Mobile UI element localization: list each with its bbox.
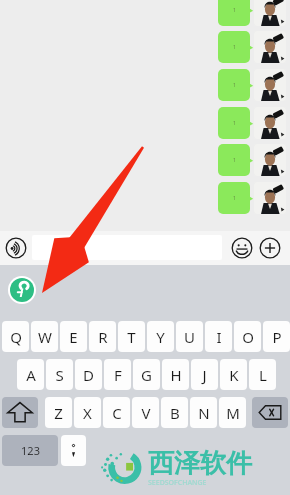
button[interactable]: L (249, 359, 276, 390)
button[interactable]: M (219, 397, 246, 428)
staticText: H (170, 365, 182, 385)
button[interactable]: F (104, 359, 131, 390)
button[interactable]: C (103, 397, 130, 428)
button[interactable]: E (60, 321, 87, 352)
button[interactable] (254, 182, 286, 214)
button[interactable]: S (46, 359, 73, 390)
staticText: V (141, 403, 151, 423)
button[interactable]: X (74, 397, 101, 428)
button[interactable]: 1 (218, 107, 250, 139)
staticText: L (259, 365, 267, 385)
staticText: SEEDSOFCHANGE (148, 478, 207, 488)
button[interactable]: J (191, 359, 218, 390)
button[interactable]: Voice message (5, 237, 27, 259)
button[interactable]: Q (2, 321, 29, 352)
button[interactable] (254, 31, 286, 63)
staticText: 1 (233, 157, 236, 164)
button[interactable] (61, 435, 86, 466)
button[interactable]: 1 (218, 31, 250, 63)
staticText: O (242, 327, 254, 347)
button[interactable]: G (133, 359, 160, 390)
button[interactable]: 123 (2, 435, 58, 466)
button[interactable]: D (75, 359, 102, 390)
button[interactable]: Y (147, 321, 174, 352)
button[interactable]: A (17, 359, 44, 390)
button[interactable]: More (259, 237, 281, 259)
staticText: 1 (233, 44, 236, 51)
button[interactable] (254, 144, 286, 176)
button[interactable]: O (234, 321, 261, 352)
staticText: X (83, 403, 92, 423)
staticText: Y (156, 327, 165, 347)
button[interactable]: 1 (218, 144, 250, 176)
button[interactable]: W (31, 321, 58, 352)
staticText: W (38, 327, 52, 347)
button[interactable]: 1 (218, 182, 250, 214)
button[interactable]: K (220, 359, 247, 390)
staticText: G (141, 365, 152, 385)
staticText: D (83, 365, 94, 385)
staticText: 1 (233, 82, 236, 89)
button[interactable]: Emoji (231, 237, 253, 259)
button[interactable] (32, 235, 222, 260)
button[interactable] (254, 0, 286, 26)
button[interactable]: Plugin (8, 276, 36, 304)
button[interactable]: R (89, 321, 116, 352)
button[interactable]: V (132, 397, 159, 428)
staticText: F (114, 365, 122, 385)
button[interactable]: I (205, 321, 232, 352)
staticText: C (112, 403, 122, 423)
staticText: I (216, 327, 222, 347)
staticText: 1 (233, 120, 236, 127)
staticText: Q (10, 327, 22, 347)
button[interactable]: Z (45, 397, 72, 428)
button[interactable]: Backspace (252, 397, 288, 428)
staticText: B (170, 403, 180, 423)
button[interactable]: P (263, 321, 290, 352)
button[interactable]: 1 (218, 0, 250, 26)
staticText: 123 (21, 443, 40, 458)
staticText: R (98, 327, 108, 347)
button[interactable]: 1 (218, 69, 250, 101)
staticText: J (202, 365, 207, 385)
button[interactable]: Shift (2, 397, 38, 428)
staticText: 1 (233, 195, 236, 202)
staticText: S (55, 365, 64, 385)
staticText: 西泽软件 (148, 447, 252, 480)
staticText: Z (54, 403, 63, 423)
staticText: U (184, 327, 195, 347)
staticText: P (272, 327, 282, 347)
button[interactable]: U (176, 321, 203, 352)
button[interactable]: B (161, 397, 188, 428)
staticText: N (198, 403, 210, 423)
button[interactable]: H (162, 359, 189, 390)
staticText: E (69, 327, 78, 347)
button[interactable] (254, 69, 286, 101)
staticText: T (127, 327, 136, 347)
staticText: K (229, 365, 239, 385)
staticText: A (26, 365, 36, 385)
button[interactable]: N (190, 397, 217, 428)
staticText: M (226, 403, 240, 423)
staticText: 1 (233, 7, 236, 14)
button[interactable] (254, 107, 286, 139)
button[interactable]: T (118, 321, 145, 352)
